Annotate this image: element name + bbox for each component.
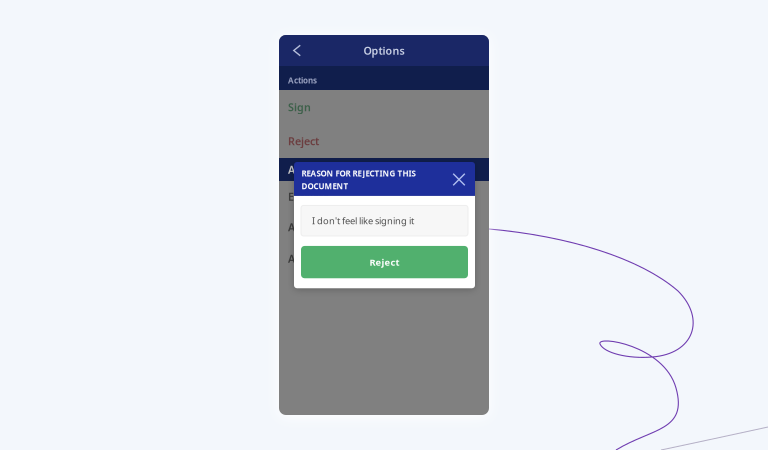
button[interactable]: Add comment bbox=[279, 242, 489, 275]
staticText: I don't feel like signing it bbox=[312, 214, 414, 227]
button[interactable]: Close bbox=[452, 168, 466, 191]
staticText: Add comment bbox=[288, 251, 361, 266]
staticText: Reject bbox=[288, 134, 319, 148]
button[interactable]: Reject bbox=[279, 124, 489, 158]
staticText: Actions bbox=[288, 75, 317, 86]
staticText: Assign task bbox=[288, 220, 346, 234]
button[interactable]: Escalate bbox=[279, 181, 489, 212]
button[interactable]: Back bbox=[284, 35, 310, 66]
button[interactable]: Accept with comment bbox=[279, 158, 489, 181]
button[interactable]: Reject bbox=[301, 246, 468, 278]
staticText: REASON FOR REJECTING THIS DOCUMENT bbox=[301, 168, 415, 191]
staticText: Escalate bbox=[288, 189, 329, 204]
button[interactable]: Assign task bbox=[279, 212, 489, 242]
button[interactable]: Sign bbox=[279, 90, 489, 124]
staticText: Options bbox=[363, 43, 404, 58]
staticText: Accept with comment bbox=[288, 162, 400, 177]
staticText: Sign bbox=[288, 100, 311, 114]
staticText: Reject bbox=[369, 256, 399, 268]
